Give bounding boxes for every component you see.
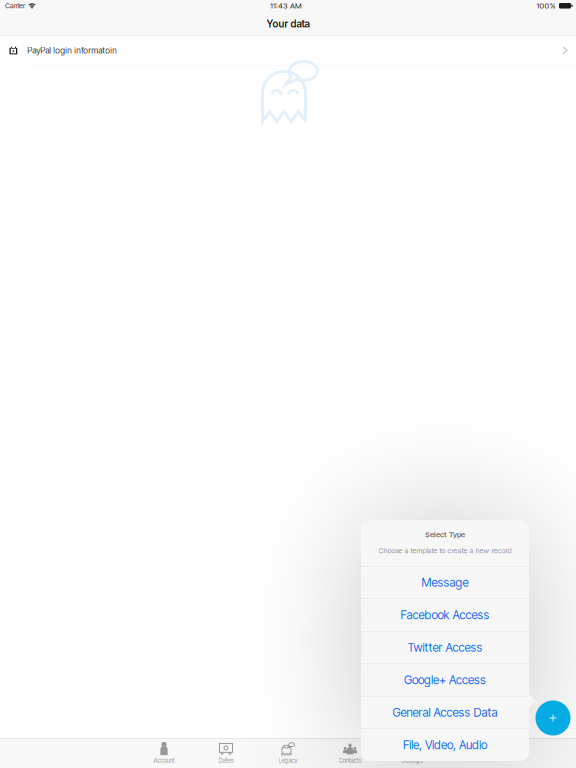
button[interactable]: Settings [381, 738, 443, 768]
staticText: Settings [401, 757, 423, 764]
staticText: 11:43 AM [270, 1, 302, 10]
button[interactable]: Message [361, 566, 529, 598]
staticText: 100% [536, 1, 555, 10]
button[interactable]: Add record [535, 700, 570, 735]
staticText: File, Video, Audio [403, 738, 487, 752]
staticText: Select Type [425, 530, 465, 539]
staticText: General Access Data [392, 705, 497, 720]
button[interactable]: Dates [195, 738, 257, 768]
staticText: Your data [266, 18, 309, 30]
button[interactable]: Google+ Access [361, 663, 529, 696]
button[interactable]: PayPal login informatoin [0, 36, 576, 65]
staticText: Carrier [5, 1, 25, 10]
button[interactable]: Facebook Access [361, 598, 529, 631]
staticText: PayPal login informatoin [27, 45, 117, 56]
button[interactable]: Contacts [319, 738, 381, 768]
staticText: Legacy [278, 757, 297, 764]
staticText: Message [421, 575, 468, 590]
button[interactable]: File, Video, Audio [361, 728, 529, 761]
staticText: Contacts [338, 757, 361, 764]
button[interactable]: Legacy [257, 738, 319, 768]
button[interactable]: Account [133, 738, 195, 768]
staticText: Facebook Access [400, 608, 489, 622]
button[interactable]: General Access Data [361, 696, 529, 728]
button[interactable]: Twitter Access [361, 631, 529, 663]
staticText: Twitter Access [407, 640, 482, 655]
staticText: Choose a template to create a new record [378, 546, 511, 555]
staticText: Dates [218, 757, 233, 764]
staticText: Account [153, 757, 174, 764]
staticText: Google+ Access [404, 673, 486, 687]
